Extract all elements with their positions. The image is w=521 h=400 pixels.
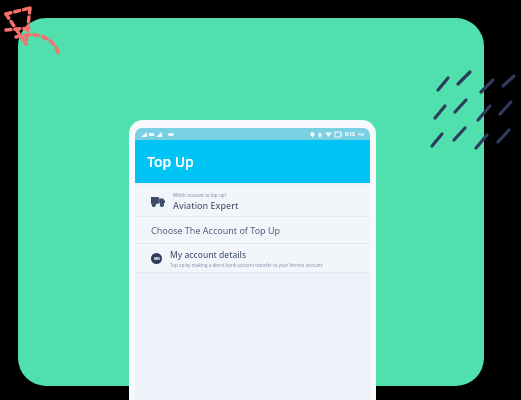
other: Account avatar: [151, 196, 165, 207]
staticText: Aviation Expert: [173, 199, 239, 211]
staticText: My account details: [170, 249, 247, 261]
staticText: Which account to top up?: [173, 192, 227, 198]
staticText: 6:10: [345, 131, 355, 138]
staticText: Top up by making a direct bank account t…: [170, 262, 324, 268]
staticText: PM: [358, 132, 365, 137]
staticText: Choose The Account of Top Up: [151, 224, 281, 236]
button[interactable]: Account avatar: [135, 186, 370, 216]
button[interactable]: MD: [135, 244, 370, 272]
button[interactable]: Choose The Account of Top Up: [135, 217, 370, 243]
staticText: Top Up: [147, 152, 194, 171]
button[interactable]: Top Up: [135, 140, 370, 183]
staticText: MD: [154, 256, 160, 261]
